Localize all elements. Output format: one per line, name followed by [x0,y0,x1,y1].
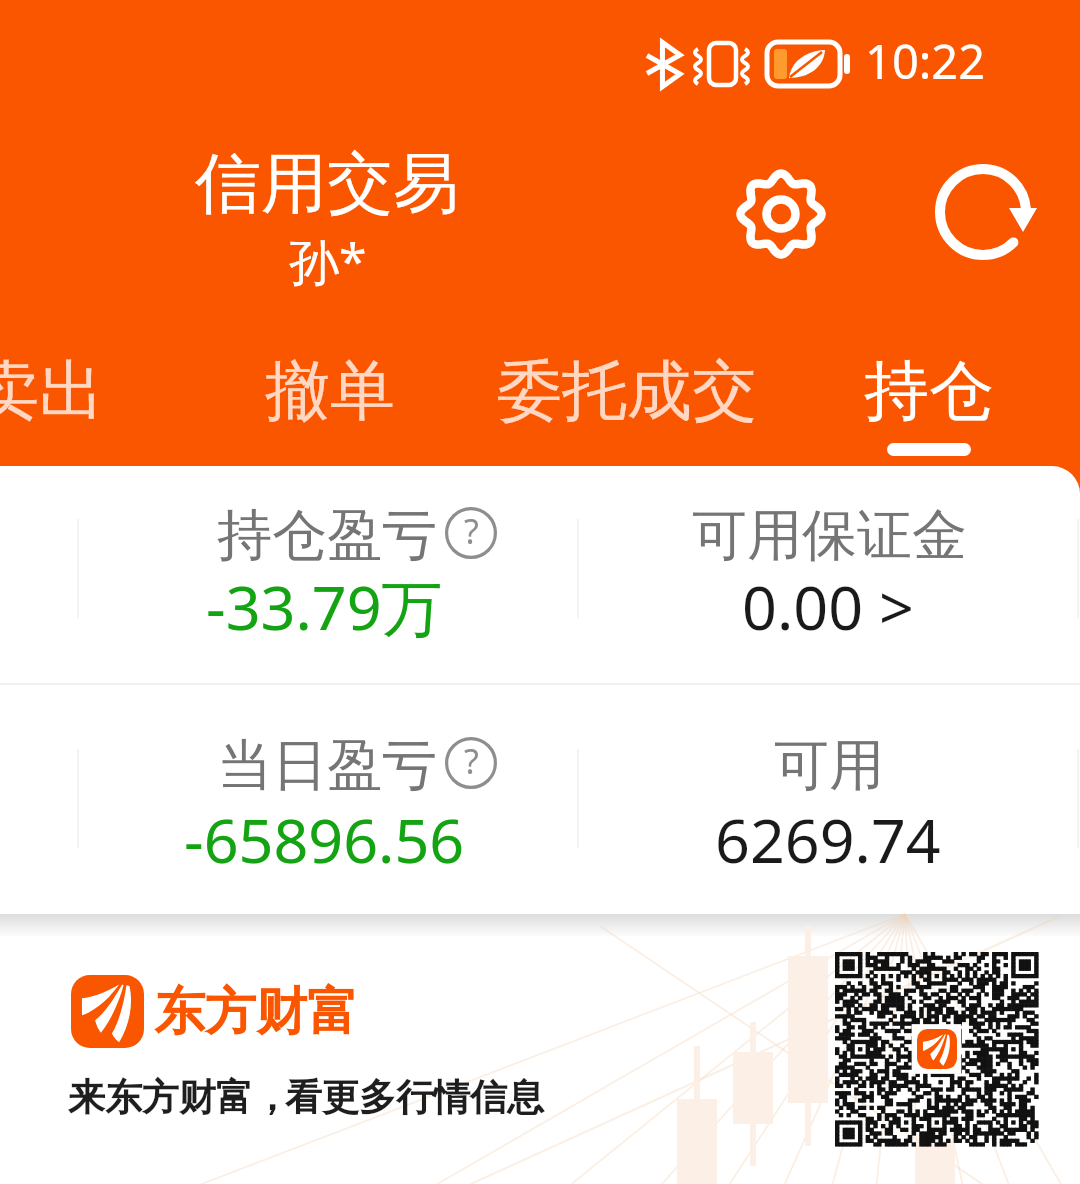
staticText: -33.79万 [206,565,443,648]
staticText: 来东方财富， [68,1074,290,1121]
staticText: 可用 [774,731,884,800]
button[interactable]: 卖出 [0,340,104,466]
button[interactable]: 东方财富 [0,914,1080,1184]
staticText: 可用保证金 [692,501,967,570]
staticText: ? [464,508,479,554]
staticText: 看更多行情信息 [285,1074,544,1121]
staticText: 持仓盈亏 [217,501,437,570]
staticText: 委托成交 [497,350,757,432]
staticText: 0.00 > [742,565,914,648]
button[interactable]: 持仓 [864,340,994,466]
staticText: ? [464,738,479,784]
button[interactable]: 委托成交 [497,340,757,466]
staticText: 卖出 [0,350,104,432]
staticText: 东方财富 [154,980,358,1044]
button[interactable] [77,466,577,684]
button[interactable]: Settings [715,148,847,280]
staticText: 撤单 [265,350,395,432]
staticText: 10:22 [865,29,986,93]
staticText: -65896.56 [184,798,465,881]
staticText: 孙* [289,227,367,295]
button[interactable] [577,466,1079,684]
button[interactable]: 撤单 [265,340,395,466]
staticText: 信用交易 [195,142,459,225]
button[interactable] [577,684,1079,914]
staticText: 6269.74 [715,798,941,881]
staticText: 持仓 [864,350,994,432]
staticText: 当日盈亏 [217,731,437,800]
button[interactable] [77,684,577,914]
button[interactable]: Refresh [917,146,1049,278]
